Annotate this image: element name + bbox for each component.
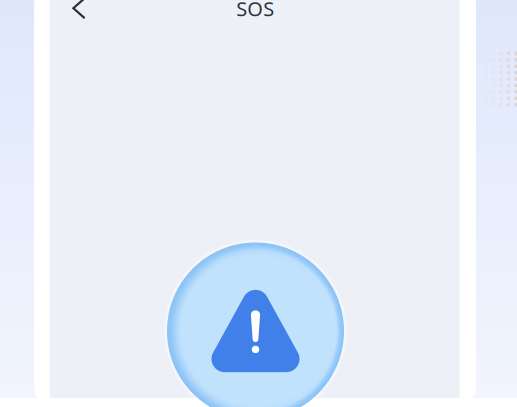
button[interactable]: Emergency SOS xyxy=(162,238,348,407)
button[interactable]: Back xyxy=(61,0,97,26)
staticText: SOS xyxy=(236,0,274,22)
